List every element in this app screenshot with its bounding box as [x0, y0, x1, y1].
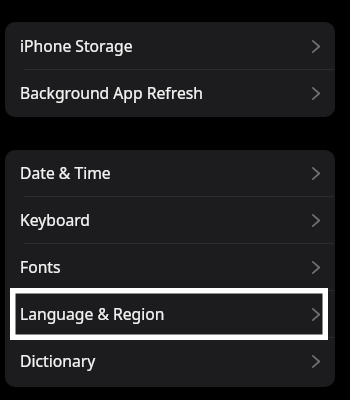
- staticText: Language & Region: [20, 303, 165, 324]
- button[interactable]: Background App Refresh: [5, 70, 335, 117]
- button[interactable]: Date & Time: [5, 150, 335, 197]
- staticText: Keyboard: [20, 209, 90, 230]
- staticText: Fonts: [20, 256, 61, 277]
- button[interactable]: Language & Region: [5, 291, 335, 338]
- staticText: iPhone Storage: [20, 35, 133, 56]
- button[interactable]: Keyboard: [5, 197, 335, 244]
- button[interactable]: iPhone Storage: [5, 22, 335, 70]
- staticText: Dictionary: [20, 350, 96, 371]
- staticText: Date & Time: [20, 162, 111, 183]
- button[interactable]: Fonts: [5, 244, 335, 291]
- button[interactable]: Dictionary: [5, 338, 335, 385]
- other: Language & Region selected: [10, 288, 328, 340]
- staticText: Background App Refresh: [20, 82, 203, 103]
